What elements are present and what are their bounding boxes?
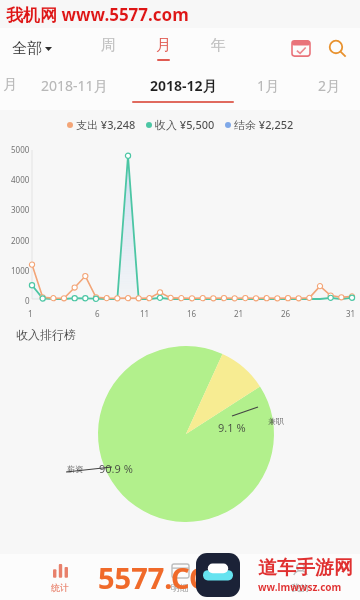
staticText: 收入 ¥5,500 [155,117,215,132]
button[interactable]: Calendar [286,33,316,63]
staticText: 2000 [11,235,30,246]
staticText: 5000 [11,144,30,155]
staticText: 2月 [318,76,341,95]
button[interactable]: 统计 [0,554,120,600]
button[interactable]: 1月 [238,68,299,110]
staticText: 支出 ¥3,248 [76,117,136,132]
staticText: 周 [101,36,116,55]
staticText: 明细 [171,582,189,593]
staticText: ww.lmwwsz.com [258,580,342,594]
button[interactable]: 月 [0,68,20,110]
button[interactable]: 我的 [240,554,360,600]
staticText: 结余 ¥2,252 [234,117,294,132]
staticText: 0 [25,295,30,306]
staticText: 统计 [51,582,69,593]
staticText: 90.9 % [99,461,133,476]
staticText: 9.1 % [218,420,246,435]
button[interactable]: 明细 [120,554,240,600]
staticText: 1月 [257,76,280,95]
staticText: 我的 [291,582,309,593]
staticText: 2018-12月 [150,76,217,95]
button[interactable]: 全部 [10,33,54,64]
staticText: 薪资 [67,464,83,474]
staticText: 5577.COM [98,558,240,597]
staticText: 我机网 www.5577.com [6,3,189,26]
staticText: 兼职 [268,416,284,426]
staticText: 4000 [11,174,30,185]
button[interactable]: 年 [202,34,235,63]
staticText: 6 [95,308,100,319]
button[interactable]: 月 [147,34,180,63]
button[interactable]: 2月 [299,68,360,110]
staticText: 1 [28,308,33,319]
button[interactable]: 周 [92,34,125,63]
button[interactable]: 2018-11月 [20,68,128,110]
staticText: 26 [281,308,291,319]
staticText: 全部 [12,39,42,58]
staticText: 21 [234,308,244,319]
button[interactable]: 2018-12月 [128,68,238,110]
staticText: 11 [140,308,150,319]
staticText: 年 [211,36,226,55]
staticText: 道车手游网 [258,556,353,580]
button[interactable]: Search [322,33,352,63]
staticText: 收入排行榜 [16,327,76,342]
staticText: 16 [187,308,197,319]
staticText: 月 [156,36,171,55]
staticText: 2018-11月 [41,76,108,95]
staticText: 月 [3,76,17,94]
staticText: 31 [346,308,356,319]
staticText: 3000 [11,204,30,215]
staticText: 1000 [11,265,30,276]
